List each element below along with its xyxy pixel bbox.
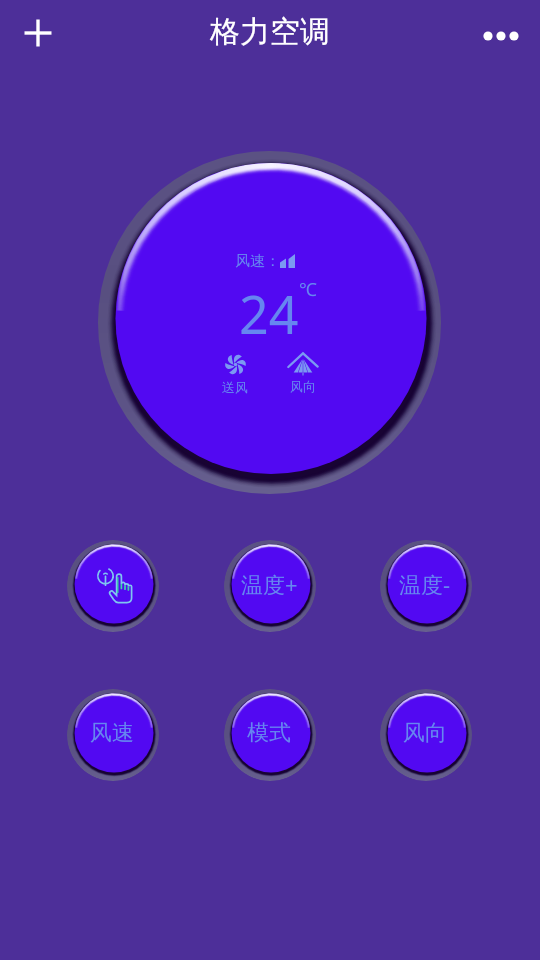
staticText: 温度+ xyxy=(241,569,298,599)
staticText: 24 xyxy=(239,278,299,349)
button[interactable]: 温度- xyxy=(380,540,472,632)
button[interactable]: 风向 xyxy=(380,689,472,781)
button[interactable]: Temperature dial xyxy=(98,151,441,494)
button[interactable]: 风速 xyxy=(67,689,159,781)
button[interactable]: 风向 xyxy=(281,352,325,394)
button[interactable]: Add device xyxy=(14,9,62,57)
button[interactable]: 送风 xyxy=(213,353,257,395)
staticText: 风向 xyxy=(403,719,447,747)
staticText: 送风 xyxy=(222,379,248,395)
staticText: 风速 xyxy=(90,719,134,747)
button[interactable]: 模式 xyxy=(224,689,316,781)
staticText: 格力空调 xyxy=(210,13,330,51)
button[interactable]: More options xyxy=(477,12,525,60)
staticText: 温度- xyxy=(399,569,451,599)
staticText: 模式 xyxy=(247,719,291,747)
button[interactable]: Power xyxy=(67,540,159,632)
staticText: 风速： xyxy=(235,252,280,271)
staticText: ℃ xyxy=(299,277,317,302)
button[interactable]: 温度+ xyxy=(224,540,316,632)
staticText: 风向 xyxy=(290,378,316,394)
